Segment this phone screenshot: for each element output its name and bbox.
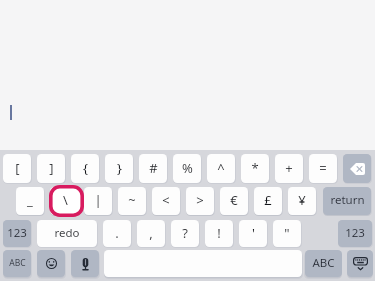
button[interactable]: [ [3,154,31,183]
staticText: + [285,159,293,177]
staticText: 123 [345,225,365,241]
staticText: _ [27,191,33,209]
staticText: # [149,159,158,177]
staticText: \ [62,191,67,209]
staticText: } [117,159,122,177]
staticText: ABC [312,255,335,271]
button[interactable]: } [105,154,133,183]
button[interactable]: * [241,154,269,183]
button[interactable]: \ [50,187,78,215]
button[interactable]: + [275,154,303,183]
button[interactable]: 123 [3,220,31,247]
button[interactable]: return [323,187,371,215]
staticText: ! [217,224,221,242]
button[interactable]: 123 [338,220,372,247]
button[interactable]: " [273,220,301,247]
button[interactable]: redo [37,220,97,247]
button[interactable]: | [84,187,112,215]
button[interactable]: ] [37,154,65,183]
staticText: | [94,191,102,209]
button[interactable]: £ [254,187,282,215]
button[interactable]: Voice input [71,250,99,277]
staticText: ^ [217,159,225,177]
staticText: ¥ [298,191,306,209]
button[interactable]: < [152,187,180,215]
button[interactable]: # [139,154,167,183]
staticText: \ [63,191,68,209]
staticText: ' [252,224,255,242]
staticText: ~ [128,191,136,209]
button[interactable]: % [173,154,201,183]
staticText: ? [182,224,188,242]
staticText: 123 [7,225,27,241]
button[interactable]: Delete [343,154,371,183]
staticText: return [330,192,365,208]
staticText: redo [54,225,80,241]
button[interactable]: ' [239,220,267,247]
button[interactable]: ABC [3,250,31,277]
staticText: < [162,191,170,209]
staticText: % [182,159,193,177]
staticText: ABC [9,257,26,269]
staticText: [ [15,159,20,177]
staticText: . [115,224,119,242]
staticText: = [319,159,327,177]
button[interactable]: { [71,154,99,183]
staticText: * [251,159,259,177]
button[interactable]: ¥ [288,187,316,215]
button[interactable]: = [309,154,337,183]
staticText: " [284,224,290,242]
button[interactable]: ~ [118,187,146,215]
button[interactable]: Emoji [37,250,65,277]
button[interactable]: Hide keyboard [347,250,373,277]
staticText: £ [264,191,272,209]
button[interactable]: ! [205,220,233,247]
button[interactable]: . [103,220,131,247]
button[interactable]: ABC [305,250,342,277]
button[interactable]: € [220,187,248,215]
button[interactable]: ? [171,220,199,247]
button[interactable]: , [137,220,165,247]
button[interactable]: ^ [207,154,235,183]
staticText: ] [49,159,54,177]
button[interactable]: > [186,187,214,215]
staticText: € [230,191,238,209]
staticText: > [196,191,204,209]
staticText: { [83,159,88,177]
staticText: , [149,224,153,242]
button[interactable]: _ [16,187,44,215]
